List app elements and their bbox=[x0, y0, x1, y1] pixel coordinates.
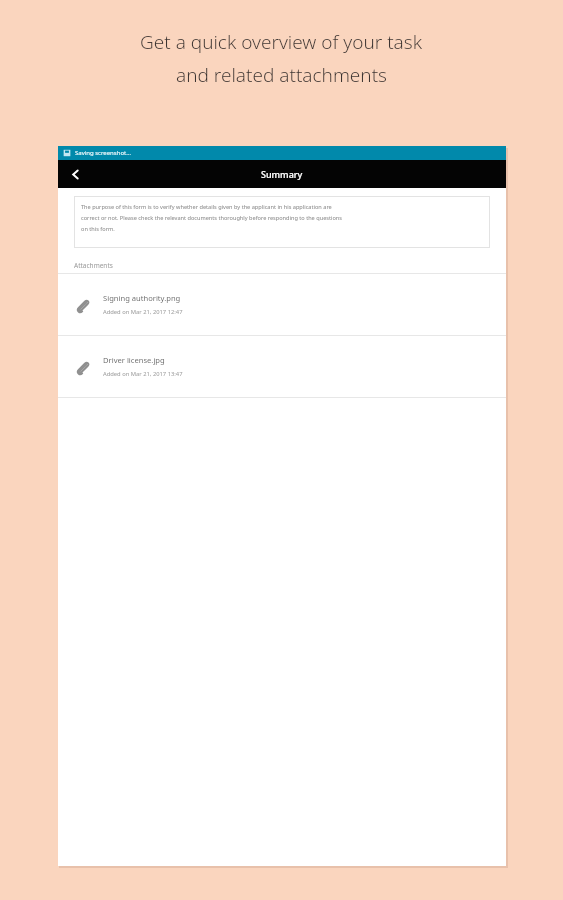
staticText: Summary bbox=[261, 168, 303, 180]
staticText: The purpose of this form is to verify wh… bbox=[81, 203, 332, 211]
button[interactable]: Driver license.jpg bbox=[58, 336, 506, 397]
button[interactable]: Back bbox=[58, 160, 92, 188]
staticText: Added on Mar 21, 2017 12:47 bbox=[103, 308, 183, 316]
staticText: Added on Mar 21, 2017 13:47 bbox=[103, 370, 183, 378]
staticText: Saving screenshot… bbox=[75, 149, 131, 157]
button[interactable]: Signing authority.png bbox=[58, 274, 506, 335]
staticText: Signing authority.png bbox=[103, 293, 181, 303]
staticText: correct or not. Please check the relevan… bbox=[81, 214, 342, 222]
staticText: and related attachments bbox=[176, 62, 388, 88]
staticText: Driver license.jpg bbox=[103, 355, 165, 365]
staticText: on this form. bbox=[81, 225, 115, 233]
staticText: Get a quick overview of your task bbox=[140, 29, 423, 55]
staticText: Attachments bbox=[74, 261, 113, 270]
